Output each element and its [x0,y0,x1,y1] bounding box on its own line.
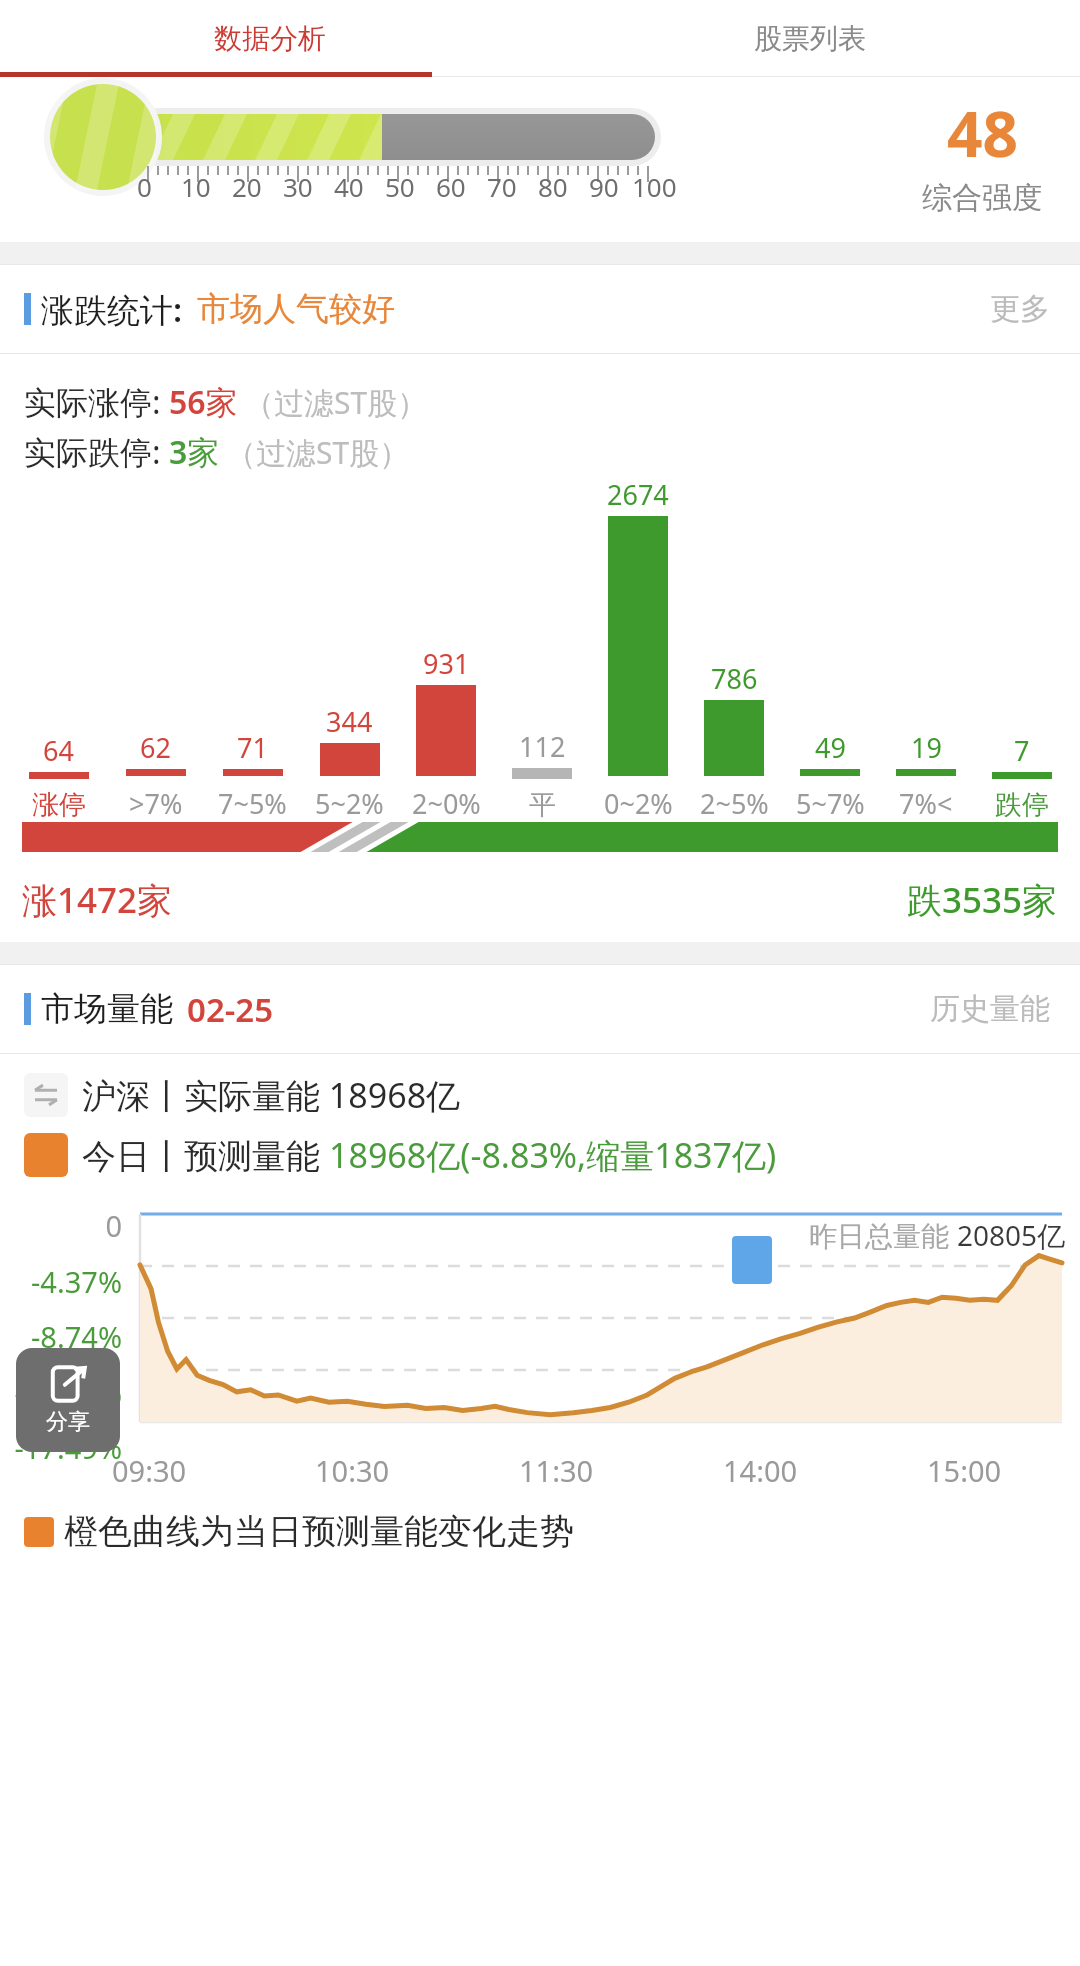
staticText: >7% [129,785,183,822]
staticText: 64 [43,732,74,769]
staticText: 0 [0,1206,122,1245]
staticText: 112 [519,728,566,765]
staticText: 02-25 [187,987,274,1032]
staticText: 40 [334,169,364,204]
staticText: 0~2% [604,785,673,822]
staticText: 综合强度 [922,179,1042,217]
staticText: 实际涨停: [24,380,161,424]
staticText: 30 [283,169,313,204]
staticText: 56家 [169,380,238,424]
staticText: 931 [423,645,470,682]
staticText: 数据分析 [214,21,326,56]
staticText: 2674 [607,476,669,513]
staticText: 62 [140,729,171,766]
button[interactable]: 股票列表 [540,0,1080,77]
staticText: 昨日总量能 [809,1216,957,1254]
staticText: 历史量能 [930,990,1050,1028]
staticText: 0 [137,169,152,204]
staticText: 20805亿 [957,1216,1066,1254]
button[interactable]: 更多 [984,284,1056,334]
staticText: 3家 [169,430,220,474]
staticText: 14:00 [723,1451,798,1490]
staticText: 90 [589,169,619,204]
button[interactable]: 数据分析 [0,0,540,77]
staticText: 跌停 [995,788,1049,822]
staticText: 10 [181,169,211,204]
staticText: 涨1472家 [22,876,173,924]
staticText: 涨停 [32,788,86,822]
staticText: 60 [436,169,466,204]
staticText: 2~0% [412,785,481,822]
staticText: 5~7% [796,785,865,822]
staticText: 70 [487,169,517,204]
staticText: -13.12% [0,1373,122,1412]
staticText: 20 [232,169,262,204]
staticText: 7%< [899,785,953,822]
staticText: 50 [385,169,415,204]
button[interactable]: 历史量能 [924,984,1056,1034]
staticText: 19 [911,729,942,766]
staticText: 涨跌统计: [41,287,183,332]
staticText: 股票列表 [754,21,866,56]
button[interactable]: 分享 [16,1348,120,1452]
staticText: 跌3535家 [907,876,1058,924]
staticText: 48 [947,91,1018,175]
staticText: 786 [711,660,758,697]
staticText: 49 [815,729,846,766]
staticText: 71 [237,729,268,766]
staticText: 5~2% [315,785,384,822]
staticText: 100 [632,169,677,204]
staticText: 09:30 [112,1451,187,1490]
staticText: 平 [529,788,556,822]
staticText: 沪深丨实际量能 18968亿 [82,1072,461,1118]
staticText: 15:00 [927,1451,1002,1490]
staticText: （过滤ST股） [244,382,428,423]
staticText: 实际跌停: [24,430,161,474]
staticText: -8.74% [0,1317,122,1356]
staticText: 18968亿(-8.83%,缩量1837亿) [329,1132,777,1178]
staticText: 10:30 [315,1451,390,1490]
staticText: 344 [326,703,373,740]
staticText: 2~5% [700,785,769,822]
staticText: 市场人气较好 [197,288,395,330]
staticText: 80 [538,169,568,204]
staticText: -4.37% [0,1262,122,1301]
staticText: 分享 [46,1408,90,1436]
staticText: 7 [1014,732,1030,769]
staticText: -17.49% [0,1428,122,1467]
staticText: 今日丨预测量能 [82,1132,329,1178]
staticText: （过滤ST股） [226,432,410,473]
staticText: 11:30 [519,1451,594,1490]
staticText: 橙色曲线为当日预测量能变化走势 [64,1510,574,1553]
staticText: 市场量能 [41,988,173,1030]
staticText: 7~5% [218,785,287,822]
staticText: 更多 [990,290,1050,328]
